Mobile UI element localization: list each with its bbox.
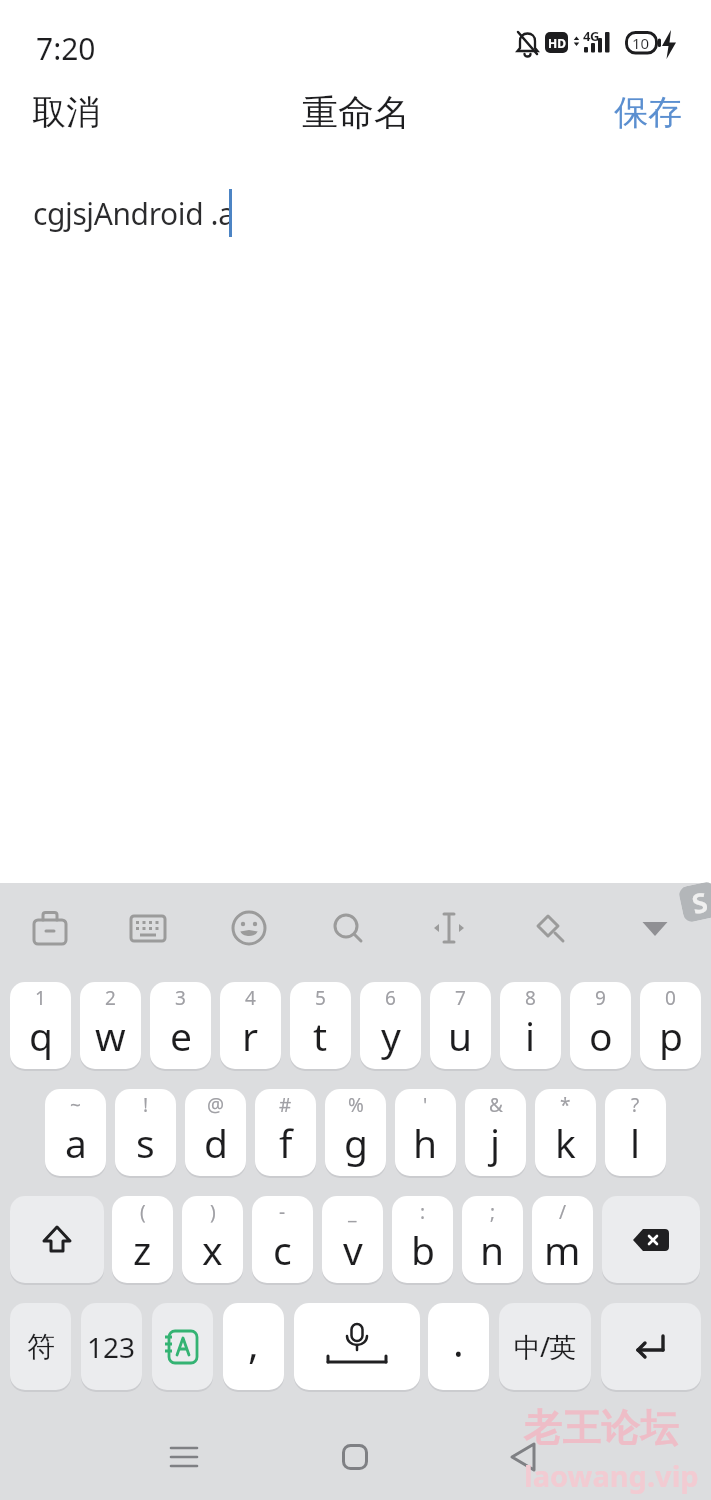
button[interactable]: #: [255, 1089, 316, 1176]
button[interactable]: [508, 1442, 538, 1472]
staticText: x: [202, 1223, 223, 1276]
staticText: c: [273, 1223, 292, 1276]
staticText: o: [589, 1009, 613, 1062]
button[interactable]: [602, 1196, 700, 1283]
staticText: 0: [665, 985, 676, 1011]
staticText: &: [489, 1092, 503, 1118]
button[interactable]: 1: [10, 982, 71, 1069]
button[interactable]: 7: [430, 982, 491, 1069]
staticText: HD: [548, 35, 566, 51]
button[interactable]: [625, 898, 685, 958]
staticText: s: [136, 1116, 155, 1169]
staticText: i: [525, 1009, 536, 1062]
button[interactable]: [152, 1303, 213, 1390]
staticText: u: [448, 1009, 473, 1062]
staticText: r: [242, 1009, 259, 1062]
button[interactable]: *: [535, 1089, 596, 1176]
staticText: z: [133, 1223, 152, 1276]
staticText: !: [143, 1092, 149, 1118]
button[interactable]: [10, 1196, 104, 1283]
staticText: 5: [315, 985, 326, 1011]
button[interactable]: 9: [570, 982, 631, 1069]
button[interactable]: 3: [150, 982, 211, 1069]
button[interactable]: 6: [360, 982, 421, 1069]
staticText: 3: [175, 985, 186, 1011]
staticText: ,: [248, 1316, 259, 1370]
staticText: 保存: [614, 91, 682, 134]
button[interactable]: ;: [462, 1196, 523, 1283]
button[interactable]: /: [532, 1196, 593, 1283]
staticText: *: [560, 1092, 571, 1118]
button[interactable]: [118, 898, 178, 958]
button[interactable]: [294, 1303, 420, 1390]
button[interactable]: ?: [605, 1089, 666, 1176]
button[interactable]: (: [112, 1196, 173, 1283]
staticText: 4G: [583, 27, 599, 43]
staticText: d: [204, 1116, 228, 1169]
staticText: 10: [632, 33, 650, 53]
button[interactable]: _: [322, 1196, 383, 1283]
button[interactable]: 中/英: [499, 1303, 591, 1390]
staticText: p: [659, 1009, 683, 1062]
staticText: 取消: [32, 91, 100, 134]
staticText: ': [423, 1092, 428, 1118]
button[interactable]: 123: [81, 1303, 142, 1390]
button[interactable]: ~: [45, 1089, 106, 1176]
staticText: 重命名: [302, 90, 410, 135]
staticText: n: [480, 1223, 505, 1276]
staticText: 7:20: [36, 28, 96, 60]
button[interactable]: :: [392, 1196, 453, 1283]
button[interactable]: 符: [10, 1303, 71, 1390]
button[interactable]: %: [325, 1089, 386, 1176]
button[interactable]: [601, 1303, 701, 1390]
button[interactable]: [419, 898, 479, 958]
button[interactable]: -: [252, 1196, 313, 1283]
staticText: e: [170, 1009, 192, 1062]
button[interactable]: 5: [290, 982, 351, 1069]
button[interactable]: 取消: [28, 88, 104, 136]
staticText: /: [559, 1199, 567, 1225]
button[interactable]: 2: [80, 982, 141, 1069]
staticText: 8: [525, 985, 536, 1011]
staticText: 1: [35, 985, 46, 1011]
button[interactable]: [318, 898, 378, 958]
button[interactable]: 4: [220, 982, 281, 1069]
button[interactable]: [20, 898, 80, 958]
button[interactable]: &: [465, 1089, 526, 1176]
staticText: v: [343, 1223, 363, 1276]
staticText: g: [344, 1116, 368, 1169]
staticText: S: [688, 883, 711, 921]
staticText: t: [313, 1009, 328, 1062]
staticText: q: [29, 1009, 53, 1062]
button[interactable]: ,: [223, 1303, 284, 1390]
button[interactable]: ': [395, 1089, 456, 1176]
staticText: ~: [70, 1092, 81, 1118]
button[interactable]: [520, 898, 580, 958]
staticText: %: [348, 1092, 364, 1118]
staticText: _: [348, 1199, 357, 1225]
staticText: 符: [27, 1329, 55, 1364]
button[interactable]: !: [115, 1089, 176, 1176]
staticText: -: [279, 1199, 286, 1225]
staticText: y: [381, 1009, 401, 1062]
button[interactable]: ): [182, 1196, 243, 1283]
button[interactable]: 保存: [612, 88, 684, 136]
staticText: cgjsjAndroid .a: [33, 193, 229, 234]
staticText: 9: [595, 985, 606, 1011]
button[interactable]: 0: [640, 982, 701, 1069]
staticText: 老王论坛: [523, 1404, 679, 1452]
staticText: 中/英: [514, 1328, 576, 1365]
button[interactable]: [169, 1442, 199, 1472]
button[interactable]: [219, 898, 279, 958]
staticText: laowang.vip: [524, 1456, 699, 1495]
staticText: .: [453, 1314, 464, 1368]
staticText: (: [140, 1199, 146, 1225]
button[interactable]: @: [185, 1089, 246, 1176]
staticText: l: [630, 1116, 641, 1169]
button[interactable]: 8: [500, 982, 561, 1069]
button[interactable]: .: [428, 1303, 489, 1390]
staticText: 7: [455, 985, 466, 1011]
staticText: ): [210, 1199, 216, 1225]
staticText: ;: [490, 1199, 496, 1225]
button[interactable]: [342, 1444, 368, 1470]
